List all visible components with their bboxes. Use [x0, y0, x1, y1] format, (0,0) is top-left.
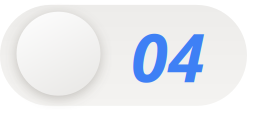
button[interactable]: Toggle, 04 [0, 0, 254, 118]
staticText: 04 [131, 12, 205, 101]
